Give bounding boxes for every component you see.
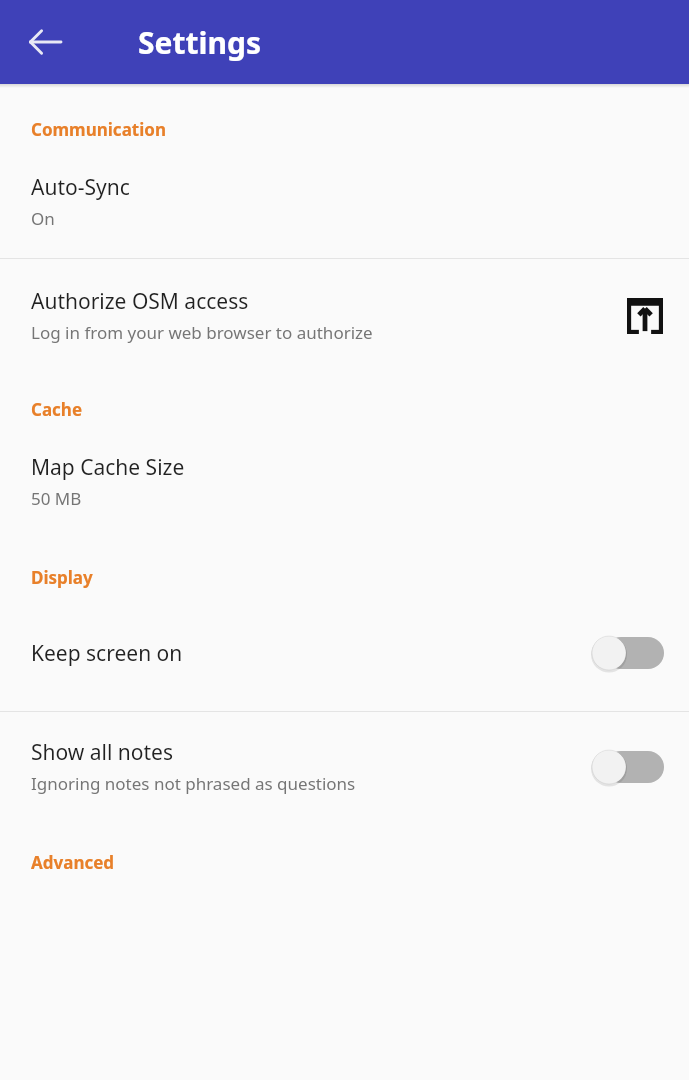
- button[interactable]: Auto-Sync: [0, 147, 689, 258]
- button[interactable]: Show all notes: [0, 712, 689, 821]
- button[interactable]: Map Cache Size: [0, 427, 689, 538]
- staticText: Authorize OSM access: [31, 287, 249, 316]
- button[interactable]: Open in browser: [623, 294, 667, 338]
- staticText: Show all notes: [31, 738, 174, 767]
- staticText: Keep screen on: [31, 639, 183, 668]
- staticText: 50 MB: [31, 487, 82, 510]
- staticText: Settings: [138, 22, 261, 63]
- staticText: Cache: [31, 398, 673, 421]
- staticText: Communication: [31, 118, 673, 141]
- staticText: Map Cache Size: [31, 453, 185, 482]
- staticText: Auto-Sync: [31, 173, 130, 202]
- staticText: Ignoring notes not phrased as questions: [31, 772, 356, 795]
- button[interactable]: Toggle: [591, 629, 667, 677]
- staticText: Advanced: [31, 851, 673, 874]
- button[interactable]: Authorize OSM access: [0, 259, 689, 370]
- button[interactable]: Keep screen on: [0, 595, 689, 711]
- staticText: On: [31, 207, 55, 230]
- staticText: Display: [31, 566, 673, 589]
- staticText: Log in from your web browser to authoriz…: [31, 321, 373, 344]
- button[interactable]: Toggle: [591, 743, 667, 791]
- button[interactable]: Back: [18, 15, 72, 69]
